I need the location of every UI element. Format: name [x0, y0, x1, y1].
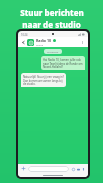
button[interactable]: Bijlage toevoegen: [21, 166, 26, 171]
button[interactable]: Hai Radio 10, komen jullie ook naar Texe…: [41, 56, 85, 70]
button[interactable]: Emoji: [71, 167, 75, 171]
button[interactable]: [28, 166, 69, 172]
button[interactable]: Terug: [21, 40, 26, 45]
button[interactable]: Meer opties: [80, 40, 85, 45]
staticText: Hai Radio 10, komen jullie ook naar Texe…: [43, 58, 83, 68]
staticText: Natuurlijk! Stuur jij een vraag in? Dan …: [23, 75, 64, 85]
staticText: Radio 10: [36, 38, 52, 43]
button[interactable]: Spraakbericht: [81, 167, 85, 171]
staticText: 10:24: [21, 33, 28, 36]
staticText: VANDAAG: [47, 50, 59, 53]
button[interactable]: Camera: [76, 167, 80, 171]
staticText: online: [36, 43, 43, 46]
button[interactable]: Natuurlijk! Stuur jij een vraag in? Dan …: [21, 73, 66, 87]
staticText: Stuur berichten: [20, 7, 84, 18]
staticText: naar de studio: [22, 19, 81, 30]
